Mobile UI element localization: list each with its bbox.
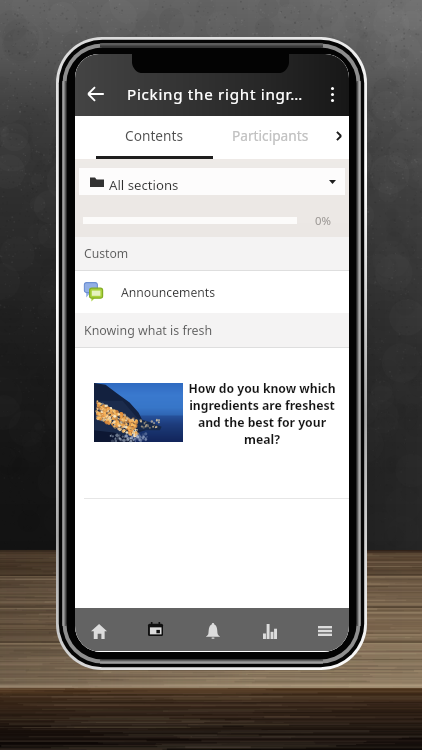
- button[interactable]: Menu: [298, 608, 349, 651]
- button[interactable]: [94, 383, 183, 442]
- staticText: How do you know which ingredients are fr…: [186, 380, 338, 448]
- staticText: Custom: [84, 245, 129, 262]
- staticText: Contents: [125, 126, 184, 145]
- button[interactable]: Back: [77, 75, 115, 113]
- button[interactable]: Notifications: [185, 608, 240, 651]
- button[interactable]: More tabs: [328, 116, 349, 159]
- staticText: 0%: [315, 213, 331, 229]
- staticText: Participants: [232, 126, 309, 145]
- button[interactable]: Reports: [242, 608, 297, 651]
- staticText: Announcements: [121, 284, 216, 301]
- button[interactable]: More options: [319, 75, 345, 113]
- staticText: Knowing what is fresh: [84, 322, 213, 339]
- staticText: All sections: [109, 176, 179, 194]
- button[interactable]: Participants: [213, 116, 328, 159]
- button[interactable]: How do you know which ingredients are fr…: [186, 380, 338, 448]
- button[interactable]: Custom: [75, 237, 349, 271]
- staticText: Picking the right ingr…: [127, 84, 303, 105]
- button[interactable]: Calendar: [128, 608, 183, 651]
- button[interactable]: Home: [75, 608, 126, 651]
- button[interactable]: Knowing what is fresh: [75, 313, 349, 348]
- button[interactable]: All sections: [79, 168, 345, 195]
- button[interactable]: Contents: [96, 116, 213, 159]
- button[interactable]: Announcements: [75, 272, 349, 314]
